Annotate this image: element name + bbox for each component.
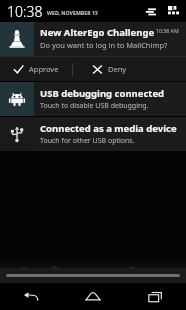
staticText: Do you want to log in to MailChimp? <box>40 40 168 50</box>
button[interactable]: Close notification shade <box>0 268 186 283</box>
staticText: T-MOBILE <box>78 269 108 277</box>
button[interactable]: Home <box>62 283 124 310</box>
button[interactable]: Connected as a media device <box>0 117 186 151</box>
staticText: Connected as a media device <box>40 122 177 135</box>
staticText: WED, NOVEMBER 13 <box>47 9 98 16</box>
staticText: Touch to disable USB debugging. <box>40 101 149 111</box>
button[interactable]: Recent apps <box>124 283 186 310</box>
button[interactable]: USB debugging connected <box>0 82 186 116</box>
button[interactable]: New AlterEgo Challenge <box>0 22 186 56</box>
staticText: New AlterEgo Challenge <box>40 26 156 39</box>
staticText: 10:38 <box>7 2 43 21</box>
button[interactable]: Quick settings <box>165 3 181 19</box>
button[interactable]: Signal <box>142 3 158 19</box>
staticText: Approve <box>29 64 59 74</box>
button[interactable]: Deny <box>73 57 146 81</box>
button[interactable]: Back <box>0 283 62 310</box>
button[interactable]: Approve <box>0 57 72 81</box>
staticText: 10:38 AM <box>156 27 179 34</box>
staticText: Deny <box>108 64 127 74</box>
staticText: Touch for other USB options. <box>40 136 135 146</box>
staticText: USB debugging connected <box>40 87 165 100</box>
